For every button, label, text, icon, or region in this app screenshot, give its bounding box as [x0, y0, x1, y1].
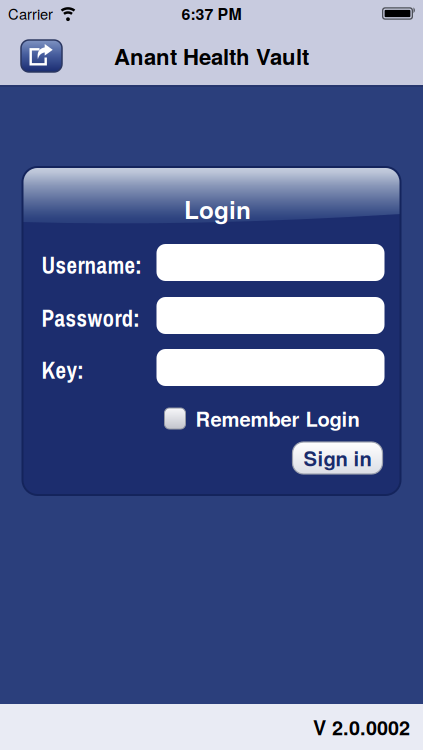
staticText: Remember Login — [195, 404, 359, 433]
button[interactable]: Remember Login — [164, 408, 359, 429]
button[interactable]: Key text field — [156, 349, 384, 386]
staticText: Login — [184, 191, 251, 226]
button[interactable]: Password text field — [156, 297, 384, 334]
button[interactable]: Sign in — [292, 442, 382, 474]
staticText: Password: — [41, 303, 139, 334]
button[interactable]: Username text field — [156, 244, 384, 281]
staticText: 6:37 PM — [181, 2, 241, 25]
staticText: Carrier — [8, 3, 53, 24]
button[interactable]: Share — [21, 40, 62, 72]
staticText: Username: — [41, 250, 141, 281]
staticText: V 2.0.0002 — [313, 713, 410, 741]
staticText: Key: — [41, 355, 83, 386]
staticText: Sign in — [303, 443, 371, 472]
staticText: Anant Health Vault — [114, 40, 309, 72]
